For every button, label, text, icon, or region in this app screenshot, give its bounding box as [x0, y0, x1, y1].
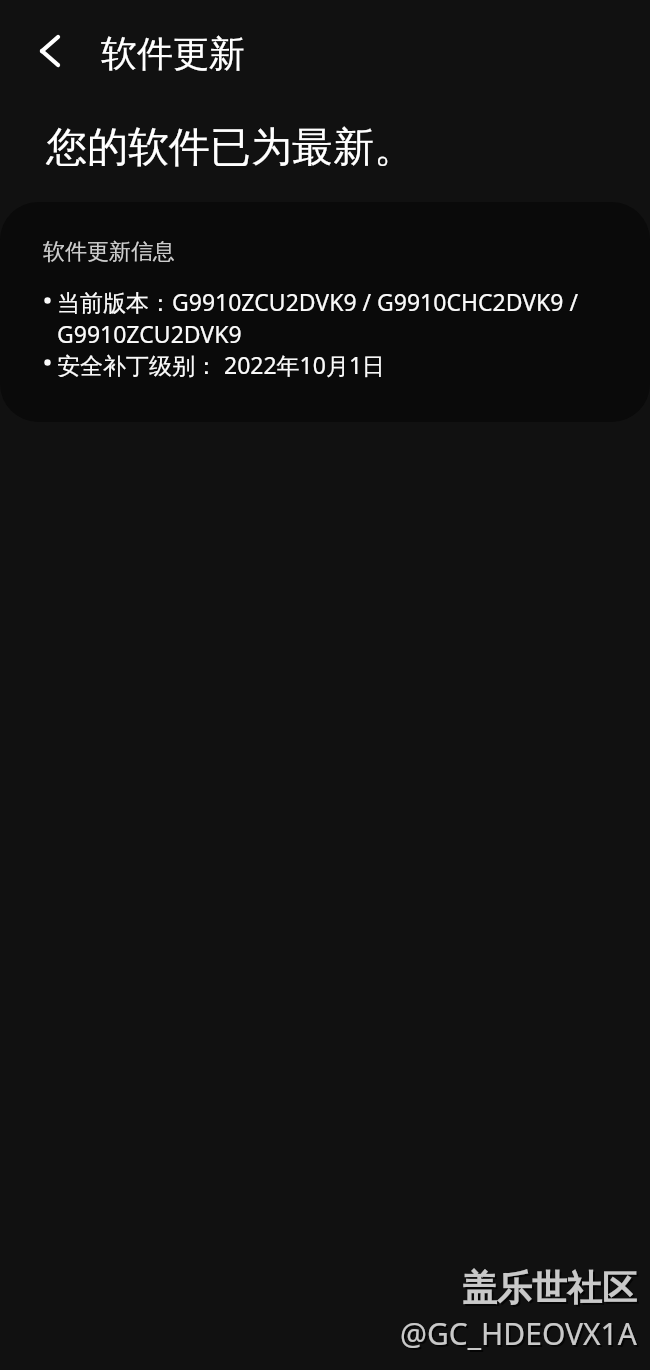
button[interactable]: Back — [26, 27, 74, 75]
staticText: 软件更新信息 — [43, 238, 175, 266]
button[interactable]: 软件更新信息 — [0, 202, 650, 422]
staticText: 盖乐世社区 — [462, 1266, 637, 1310]
staticText: 安全补丁级别： 2022年10月1日 — [57, 349, 386, 380]
staticText: 当前版本：G9910ZCU2DVK9 / G9910CHC2DVK9 / G99… — [57, 286, 587, 349]
staticText: 盖乐世社区 — [464, 1268, 639, 1312]
staticText: 您的软件已为最新。 — [46, 122, 415, 174]
staticText: 软件更新 — [101, 31, 245, 76]
staticText: @GC_HDEOVX1A — [402, 1315, 639, 1356]
staticText: @GC_HDEOVX1A — [400, 1313, 637, 1354]
